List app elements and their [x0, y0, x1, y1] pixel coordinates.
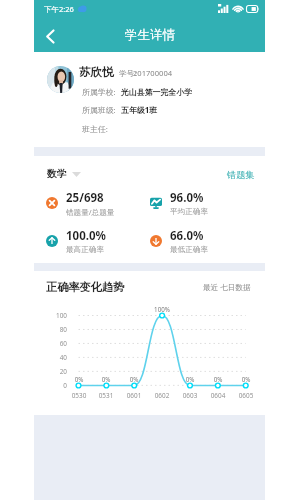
staticText: 五年级1班 — [121, 105, 158, 116]
staticText: 0603 — [179, 391, 201, 400]
staticText: 光山县第一完全小学 — [121, 87, 193, 97]
staticText: 25/698 — [66, 190, 104, 206]
staticText: 平均正确率 — [170, 207, 208, 217]
staticText: 0604 — [207, 391, 229, 400]
staticText: 0% — [207, 375, 229, 383]
staticText: 96.0% — [170, 190, 204, 206]
staticText: 正确率变化趋势 — [46, 280, 125, 294]
staticText: 最低正确率 — [170, 245, 208, 255]
button[interactable] — [44, 189, 144, 217]
staticText: 学生详情 — [125, 27, 175, 43]
staticText: 0% — [123, 375, 145, 383]
staticText: 40 — [47, 353, 67, 362]
staticText: 201700004 — [133, 68, 173, 78]
staticText: 100 — [47, 311, 67, 320]
button[interactable] — [44, 227, 144, 255]
staticText: 错题集 — [227, 169, 255, 181]
button[interactable] — [148, 189, 248, 217]
staticText: 数学 — [47, 168, 67, 180]
staticText: 0% — [179, 375, 201, 383]
staticText: 0% — [68, 375, 90, 383]
staticText: 0 — [47, 381, 67, 390]
button[interactable]: Student avatar — [47, 66, 74, 93]
staticText: 20 — [47, 367, 67, 376]
staticText: 0% — [235, 375, 257, 383]
button[interactable] — [148, 227, 248, 255]
staticText: 0602 — [151, 391, 173, 400]
staticText: 100.0% — [66, 228, 106, 244]
staticText: 最近 七日数据 — [203, 282, 251, 292]
staticText: 学号: — [119, 68, 137, 78]
staticText: 0601 — [123, 391, 145, 400]
staticText: 苏欣悦 — [79, 65, 114, 79]
staticText: 最高正确率 — [66, 245, 104, 255]
staticText: 0530 — [68, 391, 90, 400]
button[interactable]: 数学 — [47, 168, 81, 180]
staticText: 错题量/总题量 — [66, 207, 115, 217]
staticText: 班主任: — [82, 124, 108, 135]
staticText: 60 — [47, 339, 67, 348]
staticText: 66.0% — [170, 228, 204, 244]
staticText: 100% — [151, 305, 173, 313]
staticText: 所属班级: — [82, 105, 116, 116]
staticText: 0531 — [95, 391, 117, 400]
staticText: 所属学校: — [82, 87, 116, 98]
staticText: 0605 — [235, 391, 257, 400]
button[interactable]: 错题集 — [227, 169, 255, 181]
staticText: 下午2:26 — [44, 4, 74, 14]
staticText: 80 — [47, 325, 67, 334]
button[interactable]: Back — [38, 24, 62, 48]
staticText: 0% — [95, 375, 117, 383]
